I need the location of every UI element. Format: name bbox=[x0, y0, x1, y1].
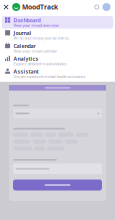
staticText: View your mood calendar bbox=[13, 48, 57, 53]
button[interactable]: Close menu bbox=[0, 1, 12, 13]
staticText: Assistant bbox=[13, 68, 38, 75]
button[interactable]: Assistant bbox=[2, 67, 113, 80]
staticText: View your mood overview bbox=[13, 23, 58, 28]
button[interactable]: Journal bbox=[2, 29, 113, 41]
button[interactable]: Analytics bbox=[2, 54, 113, 67]
staticText: Write and review journal entries bbox=[13, 35, 69, 41]
staticText: Journal bbox=[13, 29, 31, 37]
staticText: Dashboard bbox=[13, 17, 40, 24]
staticText: Calendar bbox=[13, 42, 35, 49]
button[interactable]: Profile bbox=[102, 3, 115, 11]
button[interactable]: Dashboard bbox=[2, 16, 113, 29]
staticText: Get personalized mental health assistanc… bbox=[13, 74, 85, 79]
button[interactable]: Notifications bbox=[91, 1, 102, 13]
staticText: Analytics bbox=[13, 55, 38, 62]
button[interactable]: Calendar bbox=[2, 42, 113, 54]
staticText: MoodTrack bbox=[22, 3, 58, 11]
staticText: Explore detailed mood analytics bbox=[13, 61, 67, 66]
